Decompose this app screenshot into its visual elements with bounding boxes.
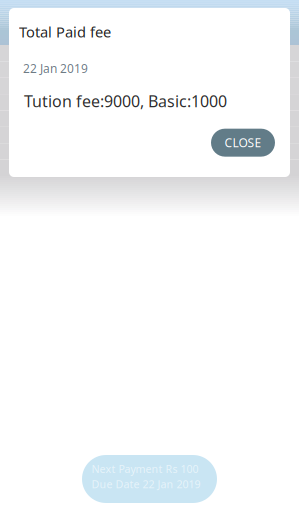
staticText: Tution fee:9000, Basic:1000 <box>24 90 227 112</box>
staticText: Due Date 22 Jan 2019 <box>91 477 200 491</box>
staticText: CLOSE <box>224 135 261 151</box>
staticText: Total Paid fee <box>19 22 111 41</box>
button[interactable]: CLOSE <box>211 129 275 157</box>
staticText: Next Payment Rs 100 <box>91 462 198 476</box>
staticText: 22 Jan 2019 <box>23 60 88 76</box>
